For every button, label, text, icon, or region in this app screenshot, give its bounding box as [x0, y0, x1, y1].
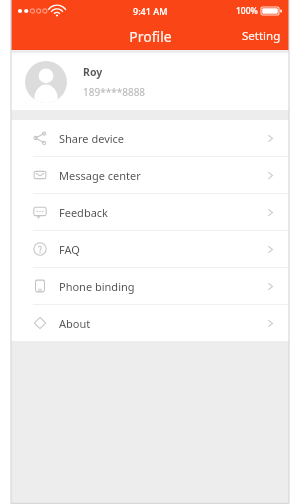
- staticText: 189****8888: [83, 85, 146, 99]
- staticText: Share device: [59, 131, 266, 146]
- button[interactable]: About: [11, 305, 289, 341]
- staticText: Message center: [59, 168, 266, 183]
- staticText: Phone binding: [59, 279, 266, 294]
- button[interactable]: FAQ: [11, 231, 289, 267]
- button[interactable]: Feedback: [11, 194, 289, 230]
- staticText: Profile: [129, 27, 172, 46]
- staticText: FAQ: [59, 242, 266, 257]
- button[interactable]: Share device: [11, 120, 289, 156]
- staticText: Roy: [83, 65, 103, 79]
- button[interactable]: Setting: [234, 24, 289, 48]
- staticText: 100%: [236, 5, 258, 17]
- staticText: Setting: [242, 28, 281, 44]
- staticText: About: [59, 316, 266, 331]
- staticText: 9:41 AM: [133, 5, 168, 17]
- staticText: Feedback: [59, 205, 266, 220]
- button[interactable]: Roy: [11, 53, 289, 110]
- button[interactable]: Message center: [11, 157, 289, 193]
- button[interactable]: Phone binding: [11, 268, 289, 304]
